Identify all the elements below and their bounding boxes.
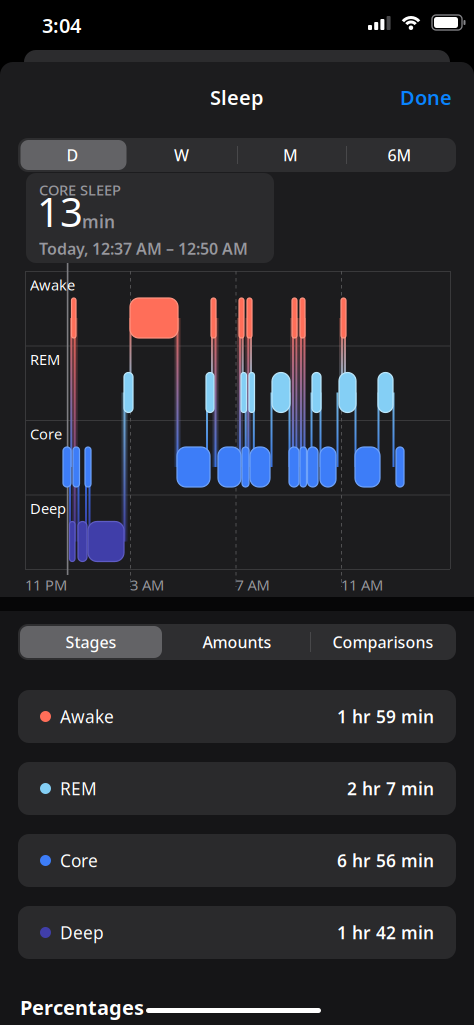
staticText: Core bbox=[30, 424, 62, 443]
staticText: Core bbox=[60, 849, 98, 872]
staticText: Done bbox=[400, 84, 452, 111]
staticText: Stages bbox=[65, 631, 116, 653]
staticText: D bbox=[66, 144, 78, 166]
staticText: W bbox=[174, 144, 189, 166]
button[interactable]: Deep bbox=[18, 906, 456, 959]
staticText: Deep bbox=[60, 921, 104, 944]
staticText: 7 AM bbox=[235, 575, 269, 594]
staticText: Amounts bbox=[202, 631, 271, 653]
staticText: min bbox=[82, 210, 115, 233]
button[interactable]: Comparisons bbox=[310, 624, 456, 660]
staticText: Today, 12:37 AM – 12:50 AM bbox=[39, 238, 248, 259]
staticText: M bbox=[283, 144, 298, 166]
staticText: 13 bbox=[37, 185, 83, 238]
staticText: 1 hr 42 min bbox=[337, 921, 434, 944]
staticText: Sleep bbox=[210, 84, 264, 111]
button[interactable]: M bbox=[236, 138, 345, 172]
button[interactable]: Core bbox=[18, 834, 456, 887]
staticText: 11 AM bbox=[341, 575, 383, 594]
button[interactable]: W bbox=[127, 138, 236, 172]
staticText: 3 AM bbox=[130, 575, 164, 594]
button[interactable]: Done bbox=[400, 84, 452, 111]
button[interactable]: Stages bbox=[18, 624, 164, 660]
staticText: 3:04 bbox=[42, 12, 81, 39]
staticText: 6M bbox=[387, 144, 411, 166]
staticText: Awake bbox=[60, 705, 114, 728]
staticText: 1 hr 59 min bbox=[337, 705, 434, 728]
button[interactable]: Awake bbox=[18, 690, 456, 743]
staticText: Deep bbox=[30, 498, 66, 518]
staticText: REM bbox=[30, 349, 60, 369]
staticText: 6 hr 56 min bbox=[337, 849, 434, 872]
staticText: 2 hr 7 min bbox=[347, 777, 434, 800]
button[interactable]: 6M bbox=[345, 138, 454, 172]
staticText: CORE SLEEP bbox=[39, 180, 121, 199]
button[interactable]: Amounts bbox=[164, 624, 310, 660]
button[interactable]: D bbox=[18, 138, 127, 172]
staticText: REM bbox=[60, 777, 97, 800]
staticText: Percentages bbox=[20, 994, 144, 1021]
button[interactable]: REM bbox=[18, 762, 456, 815]
staticText: 11 PM bbox=[25, 575, 67, 594]
staticText: Comparisons bbox=[332, 631, 433, 653]
staticText: Awake bbox=[30, 275, 75, 294]
